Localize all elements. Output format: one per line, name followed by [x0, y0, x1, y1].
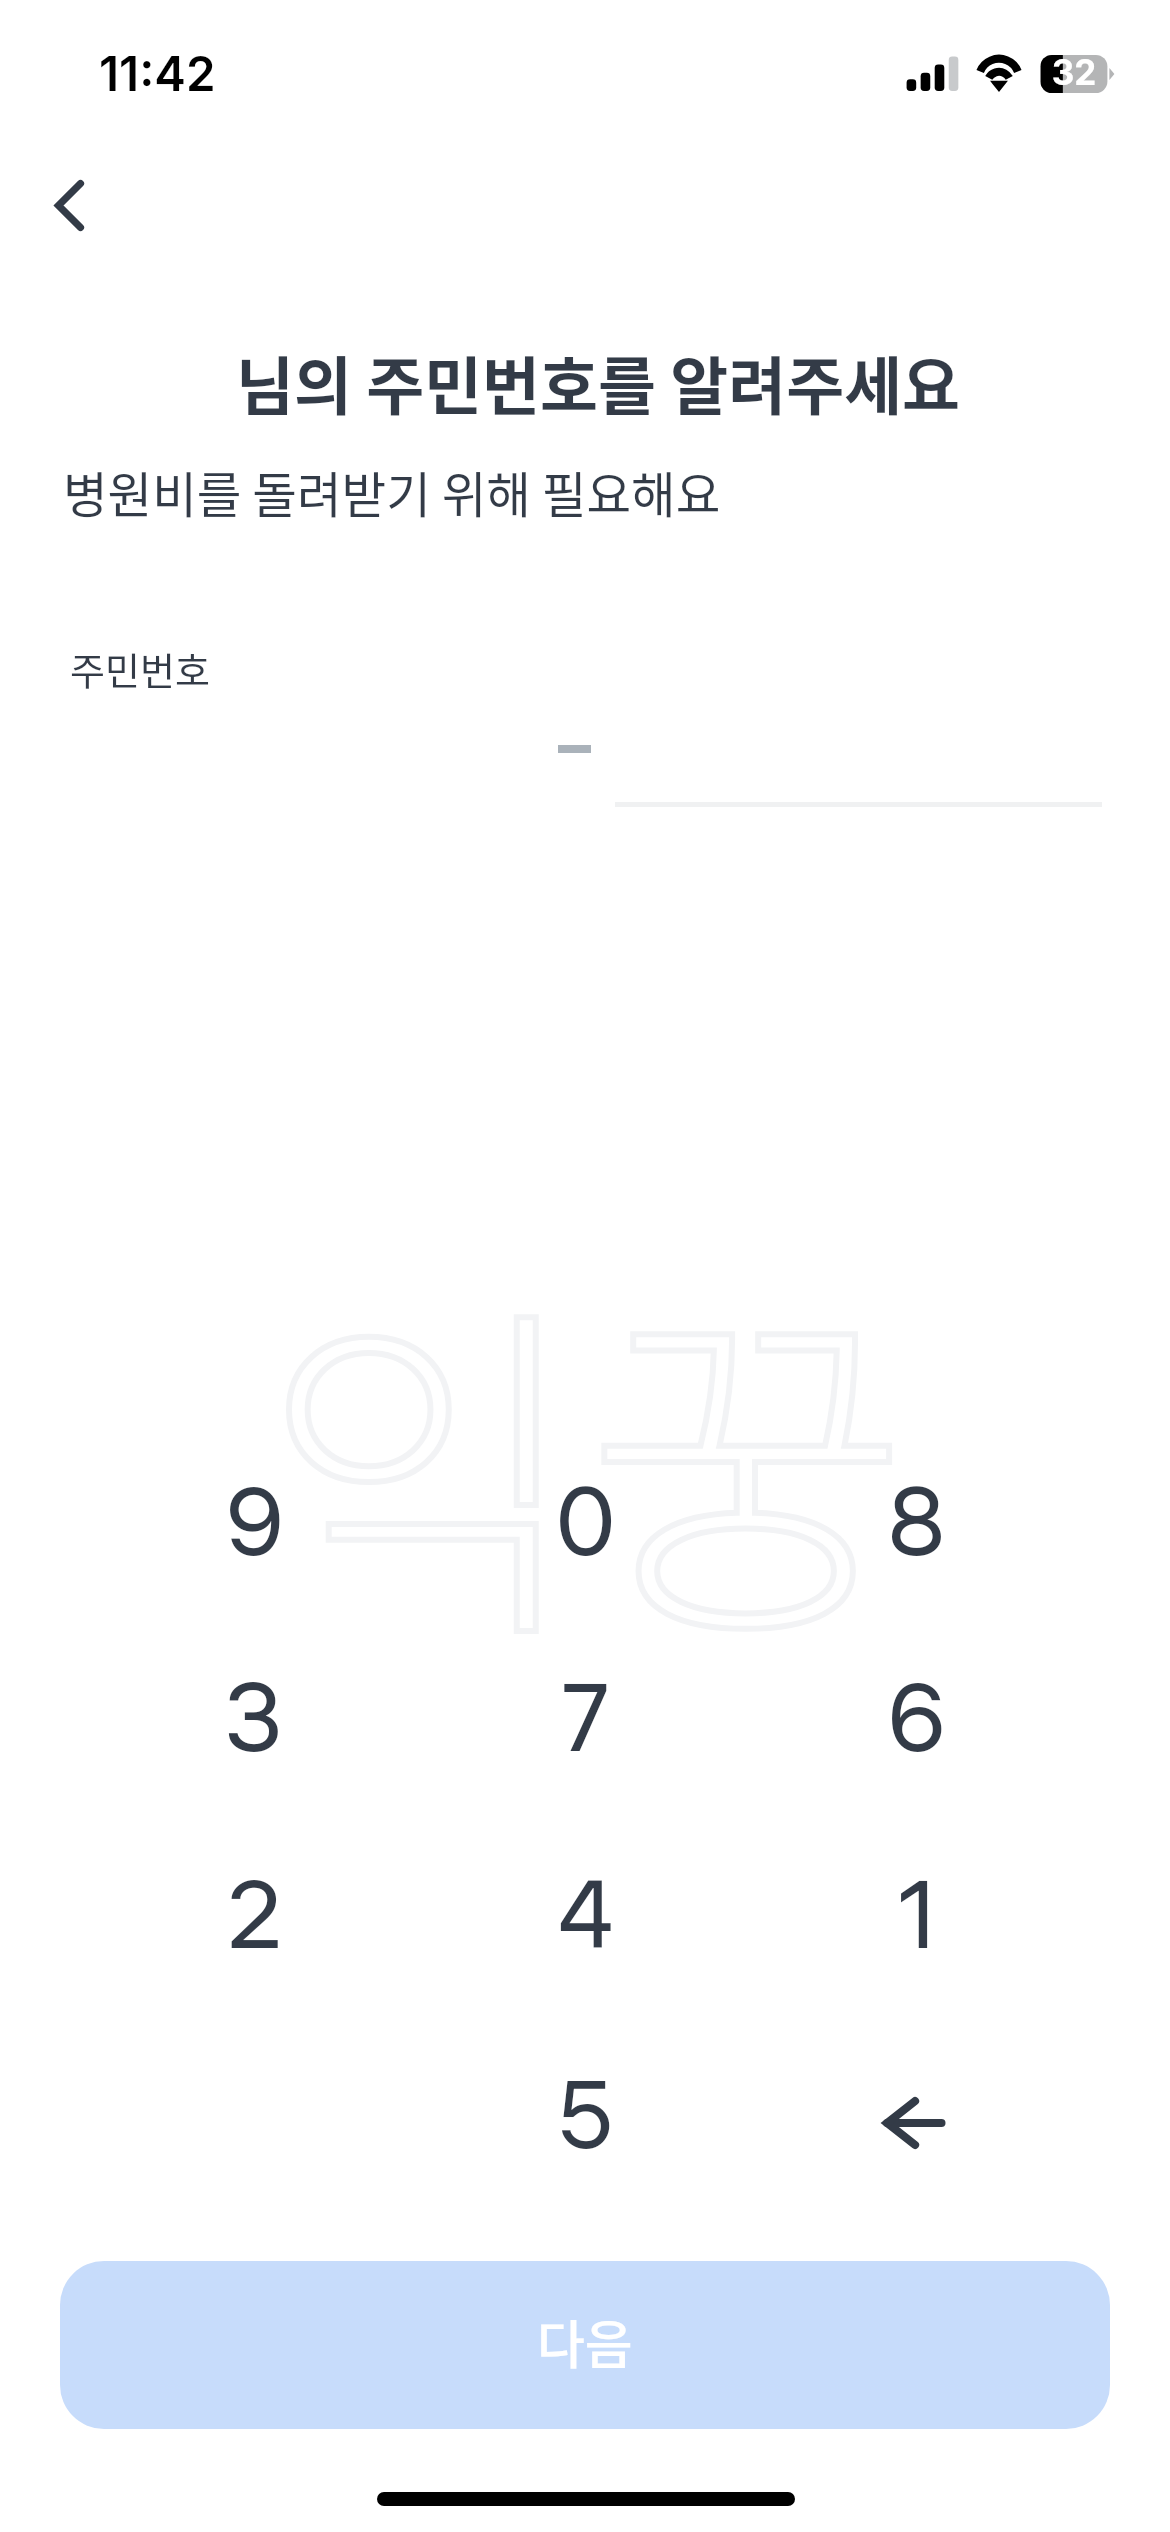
staticText: 4	[557, 1849, 614, 1986]
staticText: 다음	[537, 2304, 633, 2379]
staticText: 7	[561, 1652, 611, 1789]
staticText: 주민번호	[70, 641, 210, 696]
staticText: 님의 주민번호를 알려주세요	[13, 336, 1170, 427]
staticText: 3	[226, 1652, 283, 1789]
button[interactable]: 2	[89, 1819, 420, 2015]
staticText: 2	[227, 1849, 283, 1986]
staticText: 1	[897, 1849, 936, 1986]
staticText: 익꿍	[0, 1198, 1170, 1708]
button[interactable]: 7	[420, 1622, 751, 1818]
button[interactable]: Backspace	[751, 2019, 1082, 2215]
staticText: 11:42	[99, 45, 216, 102]
button[interactable]: 9	[89, 1426, 420, 1622]
button[interactable]: 6	[751, 1622, 1082, 1818]
button[interactable]: 다음	[60, 2261, 1110, 2429]
staticText: 5	[558, 2049, 614, 2186]
button[interactable]: Back	[16, 152, 124, 260]
button[interactable]: 주민번호 입력	[63, 700, 1107, 820]
button[interactable]: 0	[420, 1426, 751, 1622]
staticText: 8	[887, 1456, 946, 1593]
staticText: 병원비를 돌려받기 위해 필요해요	[63, 457, 721, 527]
button[interactable]: 5	[420, 2019, 751, 2215]
button[interactable]: 4	[420, 1819, 751, 2015]
staticText: 32	[1038, 51, 1110, 93]
staticText: 0	[555, 1456, 617, 1593]
button[interactable]: 1	[751, 1819, 1082, 2015]
button[interactable]: 3	[89, 1622, 420, 1818]
staticText: 9	[226, 1456, 284, 1593]
staticText: 6	[888, 1652, 946, 1789]
button[interactable]: 8	[751, 1426, 1082, 1622]
